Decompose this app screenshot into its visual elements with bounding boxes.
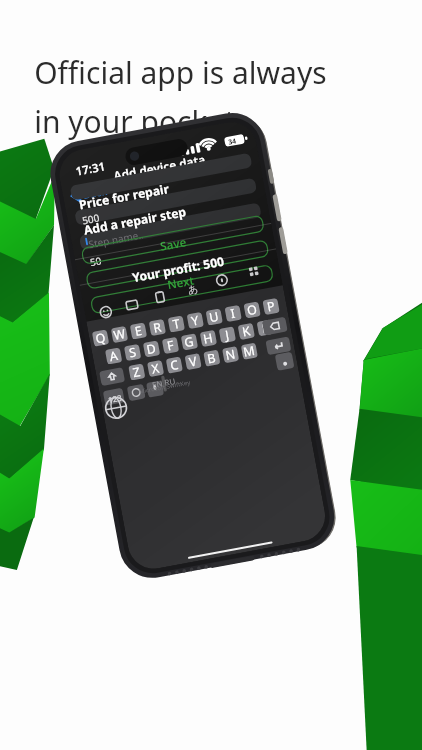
button[interactable]: Official app is always in your pocket pr… — [0, 0, 422, 750]
